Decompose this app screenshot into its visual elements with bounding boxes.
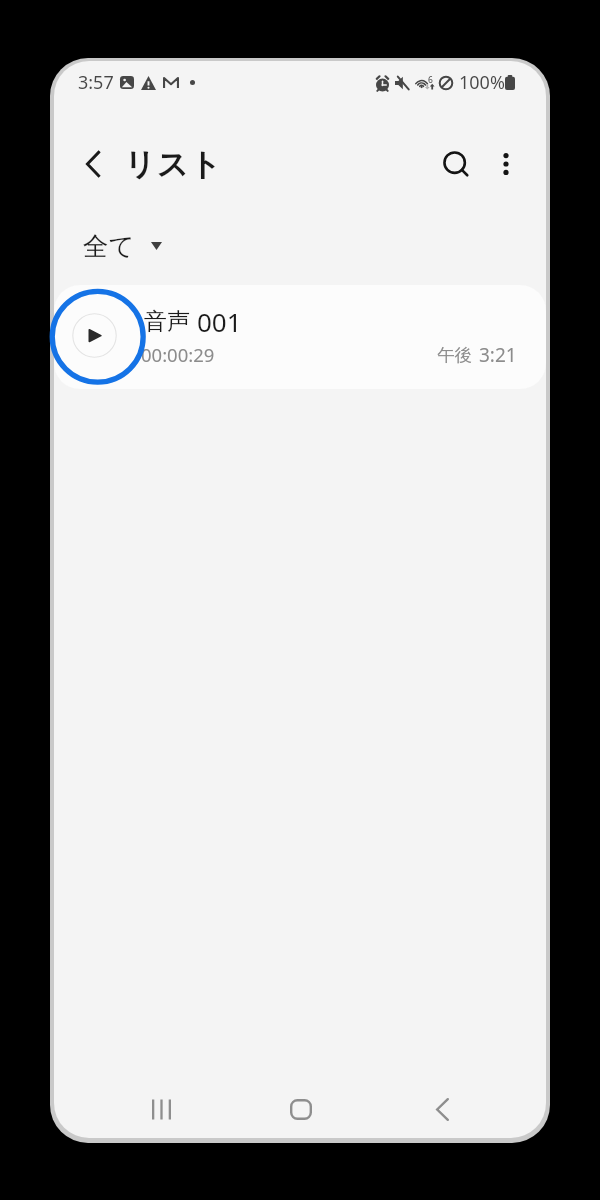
button[interactable]: Back <box>417 1084 467 1134</box>
staticText: 00:00:29 <box>141 342 215 367</box>
staticText: 午後 <box>437 344 472 366</box>
button[interactable]: Recents <box>136 1084 186 1134</box>
button[interactable]: Play <box>54 285 546 389</box>
staticText: 100% <box>459 70 505 95</box>
staticText: 全て <box>83 230 135 262</box>
button[interactable]: Play <box>68 309 121 362</box>
staticText: 001 <box>197 304 242 339</box>
staticText: 音声 <box>144 307 190 336</box>
button[interactable]: 全て <box>75 223 170 269</box>
button[interactable]: More options <box>484 142 528 186</box>
button[interactable]: Back <box>70 141 116 187</box>
staticText: 3:57 <box>78 70 114 95</box>
staticText: 6 <box>428 74 433 86</box>
button[interactable]: Search <box>434 142 480 188</box>
button[interactable]: Home <box>276 1084 326 1134</box>
staticText: リスト <box>124 145 223 184</box>
staticText: 3:21 <box>479 342 517 368</box>
